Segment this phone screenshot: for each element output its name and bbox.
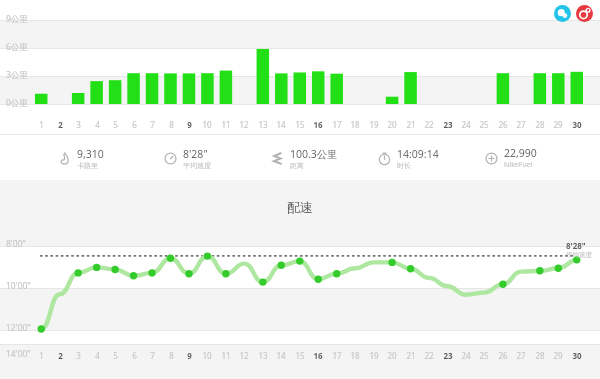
staticText: 17	[332, 119, 342, 130]
staticText: 19	[369, 350, 379, 361]
staticText: 9公里	[6, 13, 28, 25]
staticText: 24	[461, 350, 471, 361]
button[interactable]: 22,990	[485, 140, 592, 176]
staticText: NikeFuel	[504, 160, 533, 170]
staticText: 5	[113, 350, 118, 361]
staticText: 29	[553, 350, 563, 361]
staticText: 7	[150, 119, 155, 130]
button[interactable]: 8'28"	[164, 140, 271, 176]
staticText: 8	[169, 350, 174, 361]
staticText: 29	[553, 119, 563, 130]
staticText: 3公里	[6, 69, 28, 81]
staticText: 距离	[290, 161, 304, 170]
staticText: 4	[95, 119, 100, 130]
staticText: 28	[535, 119, 545, 130]
staticText: 9,310	[77, 147, 104, 161]
staticText: 11	[221, 350, 231, 361]
staticText: 25	[479, 350, 489, 361]
staticText: 20	[387, 119, 397, 130]
button[interactable]: Share to Weibo	[576, 5, 593, 22]
staticText: 14	[276, 119, 286, 130]
staticText: 30	[572, 119, 582, 130]
button[interactable]: 100.3公里	[271, 140, 378, 176]
staticText: 10	[202, 350, 212, 361]
staticText: 12	[239, 119, 249, 130]
staticText: 26	[498, 119, 508, 130]
staticText: 18	[350, 119, 360, 130]
staticText: 0公里	[6, 97, 28, 109]
staticText: 14:09:14	[397, 147, 439, 161]
staticText: 22	[424, 119, 434, 130]
staticText: 27	[516, 350, 526, 361]
staticText: 25	[479, 119, 489, 130]
staticText: 23	[443, 119, 453, 130]
staticText: 8'28"	[183, 147, 208, 161]
staticText: 13	[258, 350, 268, 361]
staticText: 9	[187, 119, 192, 130]
staticText: 14	[276, 350, 286, 361]
staticText: 6	[132, 119, 137, 130]
staticText: 23	[443, 350, 453, 361]
staticText: 7	[150, 350, 155, 361]
staticText: 4	[95, 350, 100, 361]
staticText: 9	[187, 350, 192, 361]
staticText: 2	[58, 350, 63, 361]
staticText: 3	[76, 119, 81, 130]
staticText: 15	[295, 119, 305, 130]
staticText: 卡路里	[77, 161, 98, 170]
staticText: 30	[572, 350, 582, 361]
staticText: 12	[239, 350, 249, 361]
staticText: 14'00"	[6, 348, 31, 360]
button[interactable]: 14:09:14	[378, 140, 485, 176]
staticText: 1	[39, 350, 44, 361]
staticText: 18	[350, 350, 360, 361]
staticText: 26	[498, 350, 508, 361]
staticText: 时长	[397, 161, 411, 170]
staticText: 22	[424, 350, 434, 361]
staticText: 3	[76, 350, 81, 361]
staticText: 22,990	[504, 146, 537, 160]
staticText: 8	[169, 119, 174, 130]
staticText: 2	[58, 119, 63, 130]
button[interactable]: Share to WeChat	[554, 5, 571, 22]
staticText: 配速	[287, 199, 313, 215]
staticText: 6	[132, 350, 137, 361]
staticText: 12'00"	[6, 322, 31, 334]
staticText: 20	[387, 350, 397, 361]
staticText: 21	[406, 350, 416, 361]
staticText: 16	[313, 119, 323, 130]
staticText: 10	[202, 119, 212, 130]
staticText: 8'00"	[6, 238, 26, 250]
staticText: 平均速度	[183, 161, 211, 170]
staticText: 100.3公里	[290, 147, 338, 161]
staticText: 16	[313, 350, 323, 361]
staticText: 24	[461, 119, 471, 130]
staticText: 8'28"	[566, 240, 586, 251]
staticText: 28	[535, 350, 545, 361]
staticText: 平均速度	[566, 251, 592, 259]
staticText: 15	[295, 350, 305, 361]
staticText: 11	[221, 119, 231, 130]
staticText: 13	[258, 119, 268, 130]
staticText: 27	[516, 119, 526, 130]
staticText: 21	[406, 119, 416, 130]
staticText: 17	[332, 350, 342, 361]
staticText: 1	[39, 119, 44, 130]
staticText: 10'00"	[6, 280, 31, 292]
staticText: 5	[113, 119, 118, 130]
staticText: 19	[369, 119, 379, 130]
staticText: 6公里	[6, 41, 28, 53]
button[interactable]: 9,310	[58, 140, 164, 176]
